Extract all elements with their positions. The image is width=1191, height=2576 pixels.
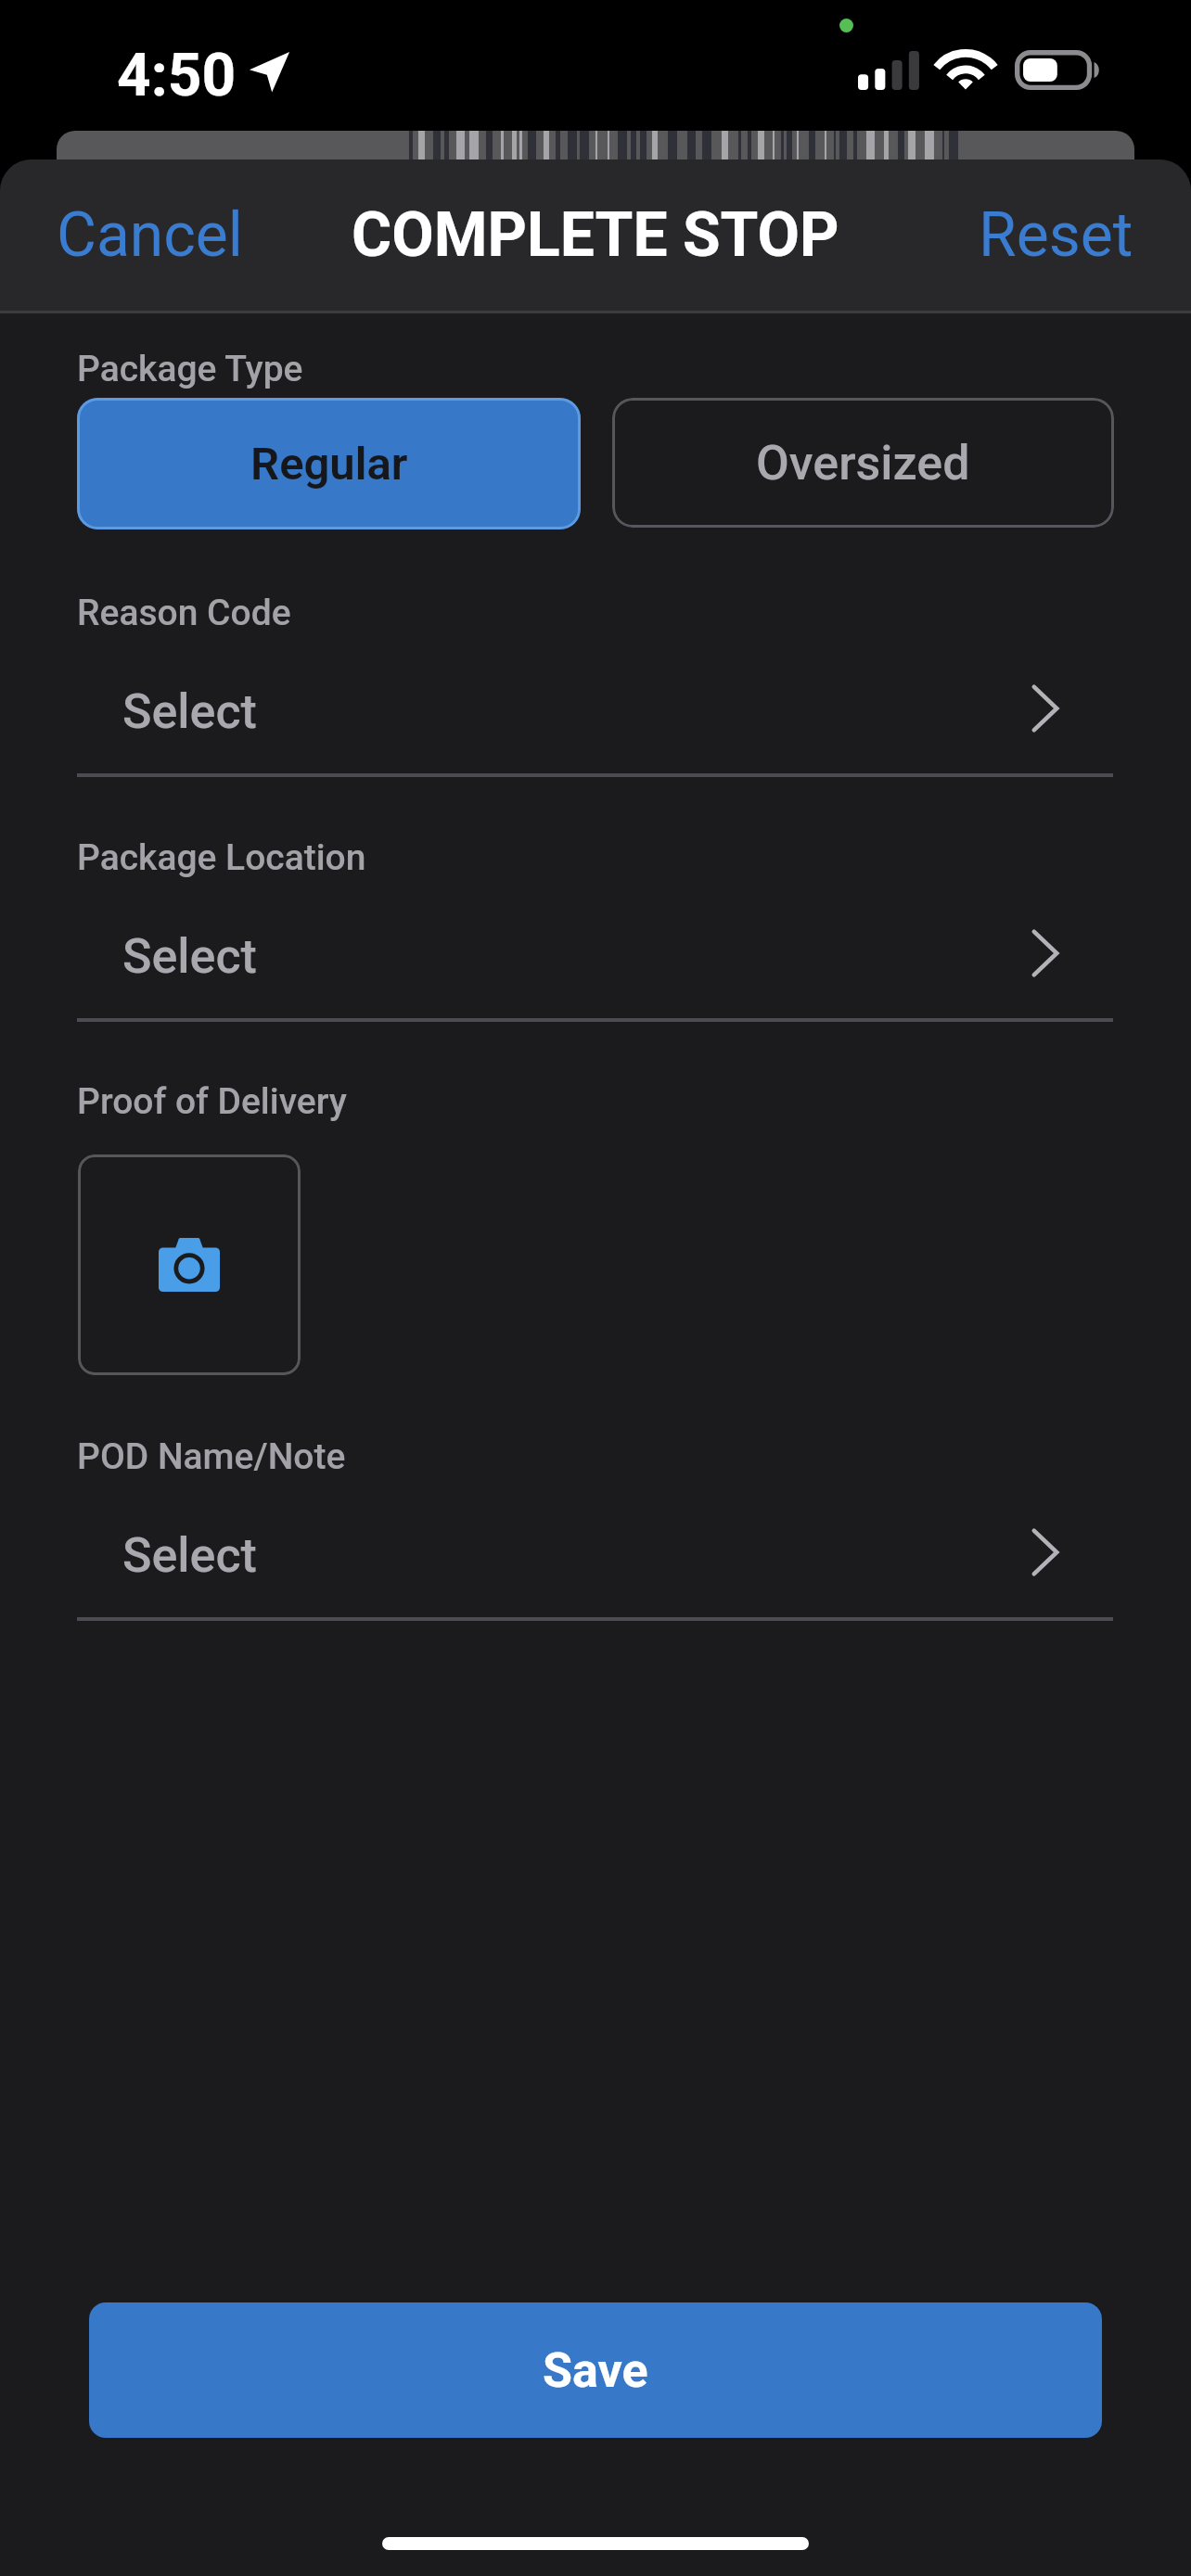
staticText: Package Location: [77, 836, 366, 879]
button[interactable]: Oversized: [612, 398, 1114, 528]
staticText: 4:50: [117, 41, 237, 110]
staticText: Oversized: [756, 435, 970, 491]
staticText: Cancel: [57, 199, 243, 271]
staticText: Reason Code: [77, 592, 291, 634]
staticText: Reset: [979, 199, 1133, 271]
button[interactable]: Reset: [960, 185, 1152, 286]
staticText: Proof of Delivery: [77, 1080, 347, 1123]
staticText: POD Name/Note: [77, 1435, 346, 1478]
button[interactable]: Regular: [77, 398, 581, 529]
staticText: Save: [543, 2342, 648, 2399]
button[interactable]: Take photo: [78, 1154, 301, 1375]
staticText: COMPLETE STOP: [352, 199, 839, 271]
staticText: Select: [122, 928, 257, 985]
button[interactable]: Save: [89, 2302, 1102, 2438]
staticText: Select: [122, 683, 257, 740]
button[interactable]: Cancel: [38, 185, 262, 286]
staticText: Regular: [250, 438, 408, 491]
staticText: Package Type: [77, 348, 303, 390]
staticText: Select: [122, 1527, 257, 1584]
